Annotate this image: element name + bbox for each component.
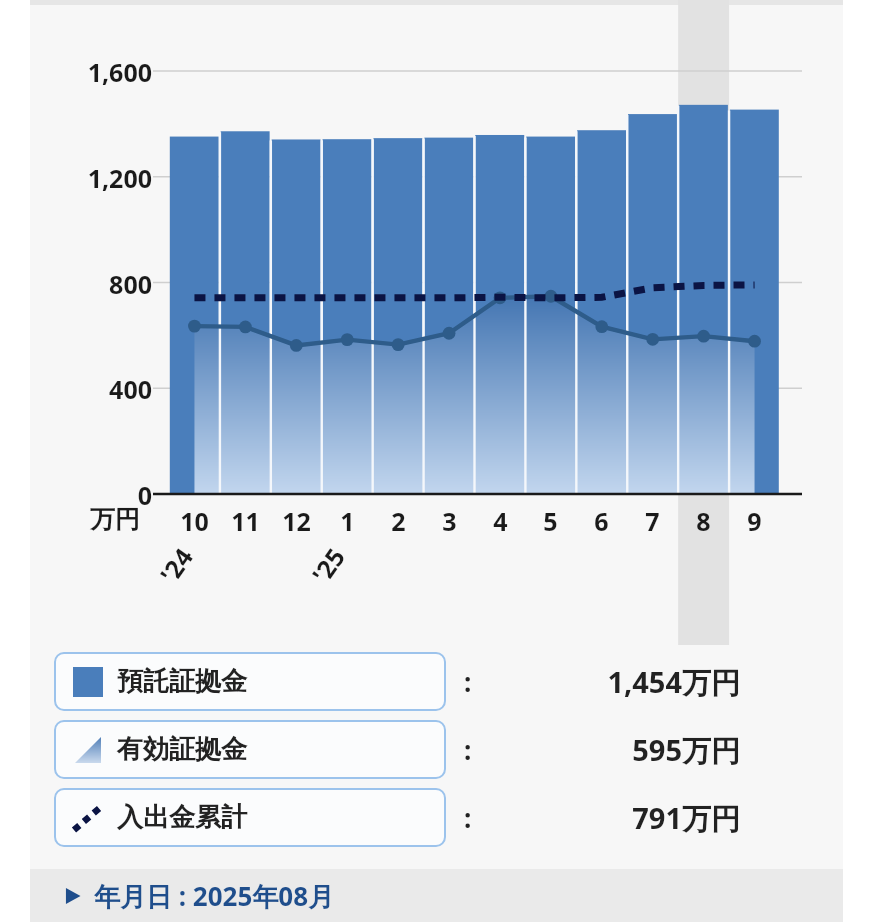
- staticText: 3: [424, 504, 475, 538]
- staticText: 11: [220, 504, 271, 538]
- staticText: 10: [169, 504, 220, 538]
- staticText: 1,600: [28, 55, 152, 89]
- staticText: 0: [28, 478, 152, 512]
- staticText: 8: [678, 504, 729, 538]
- staticText: '24: [152, 540, 200, 589]
- staticText: :: [464, 732, 472, 767]
- staticText: 6: [576, 504, 627, 538]
- button[interactable]: 預託証拠金: [55, 653, 445, 710]
- other: Expand date: [62, 885, 84, 907]
- staticText: 1: [322, 504, 373, 538]
- staticText: 1,454万円: [500, 662, 740, 702]
- staticText: 7: [627, 504, 678, 538]
- staticText: 12: [271, 504, 322, 538]
- staticText: 595万円: [500, 730, 740, 770]
- button[interactable]: 入出金累計: [55, 789, 445, 846]
- staticText: 4: [475, 504, 526, 538]
- staticText: 万円: [90, 504, 140, 535]
- staticText: 入出金累計: [117, 801, 247, 834]
- staticText: 791万円: [500, 798, 740, 838]
- button[interactable]: 有効証拠金: [55, 721, 445, 778]
- staticText: 年月日 : 2025年08月: [94, 878, 335, 914]
- staticText: 有効証拠金: [117, 733, 247, 766]
- staticText: 2: [373, 504, 424, 538]
- staticText: 1,200: [28, 161, 152, 195]
- staticText: 800: [28, 267, 152, 301]
- staticText: '25: [304, 540, 352, 589]
- staticText: 5: [525, 504, 576, 538]
- staticText: 400: [28, 372, 152, 406]
- staticText: :: [464, 664, 472, 699]
- staticText: 預託証拠金: [117, 665, 247, 698]
- button[interactable]: Expand date: [30, 869, 843, 922]
- staticText: :: [464, 800, 472, 835]
- staticText: 9: [729, 504, 780, 538]
